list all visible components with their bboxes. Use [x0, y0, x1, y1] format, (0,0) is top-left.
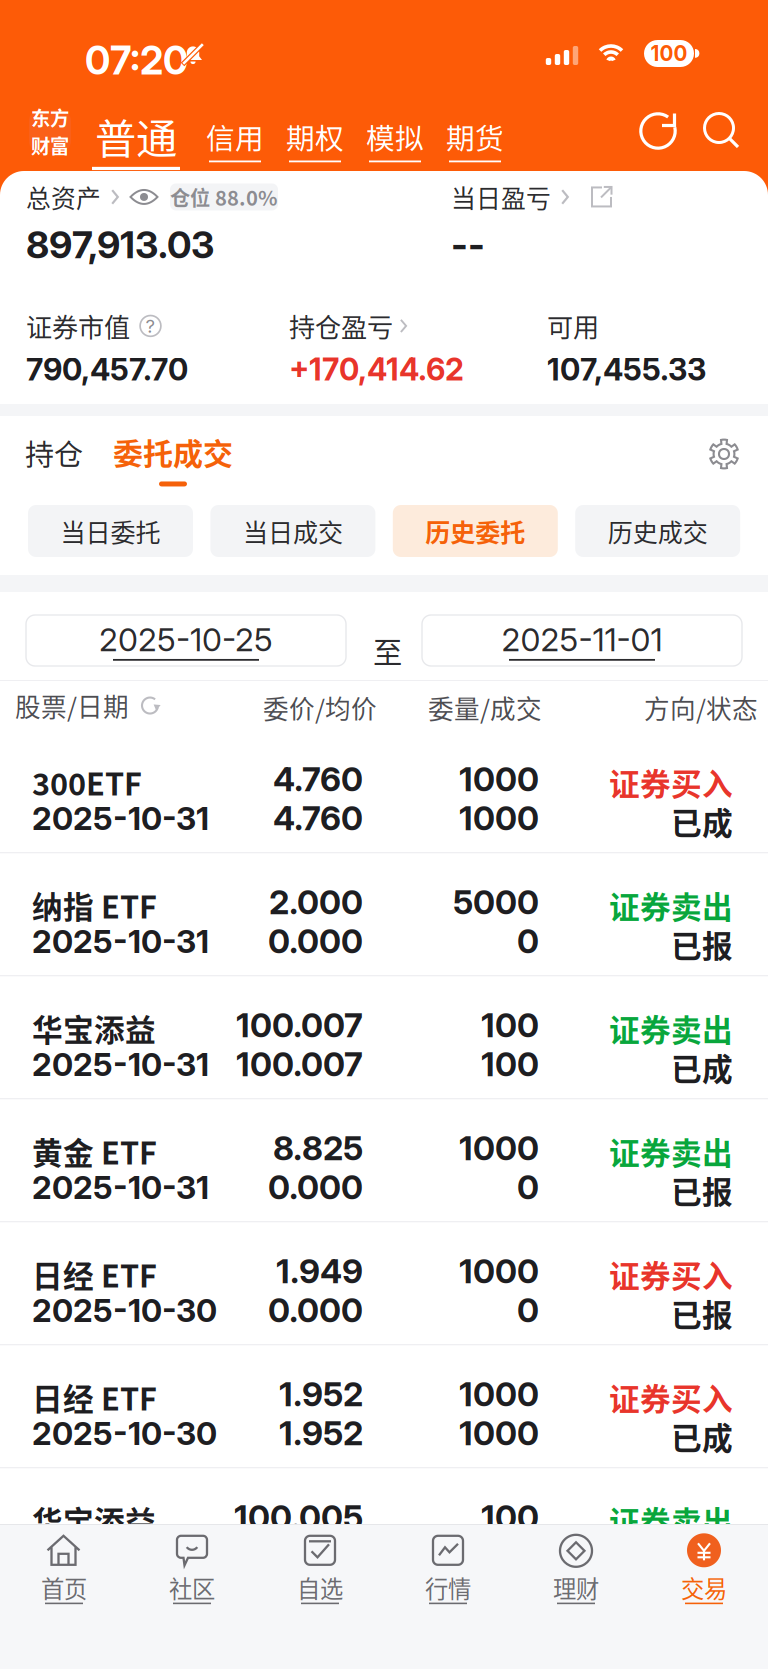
staticText: 1000	[459, 1251, 539, 1291]
staticText: 5000	[453, 882, 539, 922]
button[interactable]: 2025-11-01	[422, 615, 742, 666]
button[interactable]: 当日盈亏	[451, 179, 614, 215]
button[interactable]: 2025-10-25	[26, 615, 346, 666]
button[interactable]: 总资产	[26, 179, 120, 215]
button[interactable]: 日经 ETF	[0, 1223, 768, 1346]
button[interactable]: 300ETF	[0, 731, 768, 854]
staticText: 已成	[671, 1045, 733, 1089]
staticText: 2025-10-30	[32, 1537, 217, 1576]
button[interactable]: 自选	[256, 1517, 384, 1621]
staticText: 委价/均价	[263, 689, 377, 726]
staticText: 100	[481, 1044, 539, 1084]
button[interactable]: 期权	[286, 116, 344, 162]
staticText: 1000	[459, 1128, 539, 1168]
staticText: 已成	[671, 1414, 733, 1458]
staticText: 2.000	[269, 882, 363, 922]
staticText: 2025-10-31	[32, 1045, 209, 1084]
staticText: +170,414.62	[289, 351, 464, 388]
button[interactable]: 模拟	[366, 116, 424, 162]
staticText: 0	[517, 1290, 539, 1330]
staticText: 0.000	[268, 1167, 363, 1207]
staticText: 当日委托	[60, 513, 160, 549]
staticText: 财富	[31, 131, 69, 159]
button[interactable]: 华宝添益	[0, 1469, 768, 1592]
staticText: 已报	[671, 1168, 733, 1212]
staticText: 证券买入	[609, 1252, 733, 1296]
staticText: 东方	[31, 103, 69, 131]
button[interactable]: 首页	[0, 1517, 128, 1621]
button[interactable]: 纳指 ETF	[0, 854, 768, 977]
staticText: 100.005	[234, 1497, 363, 1537]
button[interactable]: 普通	[92, 106, 180, 170]
staticText: 1.949	[276, 1251, 363, 1291]
staticText: 107,455.33	[547, 351, 706, 388]
staticText: 100	[650, 41, 687, 66]
button[interactable]: 当日成交	[210, 505, 375, 557]
staticText: 自选	[297, 1571, 343, 1605]
staticText: 日经 ETF	[32, 1252, 157, 1296]
staticText: 1.952	[279, 1413, 363, 1453]
button[interactable]: 历史委托	[393, 505, 558, 557]
staticText: 0	[517, 921, 539, 961]
button[interactable]: 当日委托	[28, 505, 193, 557]
staticText: 1.952	[279, 1374, 363, 1414]
staticText: 8.825	[273, 1128, 363, 1168]
button[interactable]: 刷新	[640, 112, 678, 150]
staticText: 0.000	[268, 921, 363, 961]
staticText: 已成	[671, 799, 733, 843]
button[interactable]: 隐藏金额	[129, 185, 159, 209]
button[interactable]: 持仓盈亏	[289, 307, 408, 345]
button[interactable]: 交易	[640, 1517, 768, 1621]
button[interactable]: 东方财富	[29, 110, 71, 152]
staticText: 理财	[553, 1571, 599, 1605]
staticText: 2025-10-25	[99, 620, 273, 659]
staticText: 2025-10-31	[32, 799, 209, 838]
staticText: 证券卖出	[609, 883, 733, 927]
staticText: 2025-11-01	[501, 620, 662, 659]
staticText: 1000	[459, 1413, 539, 1453]
staticText: 790,457.70	[26, 351, 188, 388]
staticText: 期货	[446, 116, 504, 157]
button[interactable]: 日经 ETF	[0, 1346, 768, 1469]
staticText: 信用	[206, 116, 264, 157]
staticText: 持仓	[25, 432, 83, 474]
button[interactable]: 信用	[206, 116, 264, 162]
staticText: 可用	[547, 307, 599, 345]
button[interactable]: 搜索	[703, 112, 741, 150]
button[interactable]: 委托成交	[113, 430, 233, 486]
button[interactable]: 历史成交	[575, 505, 740, 557]
staticText: 2025-10-30	[32, 1414, 217, 1453]
staticText: 社区	[169, 1571, 215, 1605]
staticText: 1000	[459, 798, 539, 838]
staticText: 4.760	[273, 798, 363, 838]
button[interactable]: 分享	[589, 184, 614, 209]
button[interactable]: 设置	[708, 438, 740, 470]
staticText: 委量/成交	[428, 689, 542, 726]
staticText: 委托成交	[113, 430, 233, 473]
button[interactable]: 华宝添益	[0, 977, 768, 1100]
button[interactable]: 期货	[446, 116, 504, 162]
button[interactable]: 行情	[384, 1517, 512, 1621]
staticText: 证券买入	[609, 760, 733, 804]
staticText: 首页	[41, 1571, 87, 1605]
staticText: 证券市值	[26, 307, 130, 345]
staticText: 100.007	[236, 1005, 363, 1045]
staticText: 证券卖出	[609, 1498, 733, 1542]
staticText: 历史成交	[608, 513, 708, 549]
button[interactable]: 社区	[128, 1517, 256, 1621]
staticText: 当日盈亏	[451, 179, 551, 215]
staticText: 100.005	[234, 1536, 363, 1576]
staticText: 证券卖出	[609, 1006, 733, 1050]
staticText: 模拟	[366, 116, 424, 157]
staticText: 交易	[681, 1571, 727, 1605]
staticText: 2025-10-30	[32, 1291, 217, 1330]
staticText: 1000	[459, 759, 539, 799]
staticText: 方向/状态	[644, 689, 758, 726]
button[interactable]: 黄金 ETF	[0, 1100, 768, 1223]
staticText: 已报	[671, 922, 733, 966]
button[interactable]: 持仓	[25, 432, 83, 474]
staticText: 100	[481, 1497, 539, 1537]
staticText: 证券卖出	[609, 1129, 733, 1173]
button[interactable]: 理财	[512, 1517, 640, 1621]
